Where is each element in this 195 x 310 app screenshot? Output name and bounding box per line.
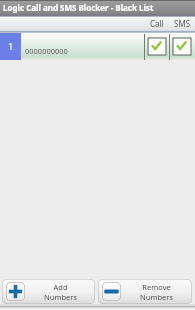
staticText: SMS xyxy=(174,18,191,29)
staticText: Call xyxy=(150,18,164,29)
button[interactable]: Remove xyxy=(98,279,192,304)
staticText: Add xyxy=(53,282,68,292)
staticText: 0000000000 xyxy=(25,46,68,56)
staticText: Numbers xyxy=(44,292,77,302)
button[interactable]: Toggle xyxy=(144,33,169,60)
staticText: Remove xyxy=(142,282,171,292)
button[interactable]: Toggle xyxy=(169,33,195,60)
staticText: 1 xyxy=(8,40,14,53)
staticText: Logic Call and SMS Blocker - Black List xyxy=(3,2,154,13)
staticText: Numbers xyxy=(140,292,173,302)
button[interactable]: Add xyxy=(2,279,95,304)
